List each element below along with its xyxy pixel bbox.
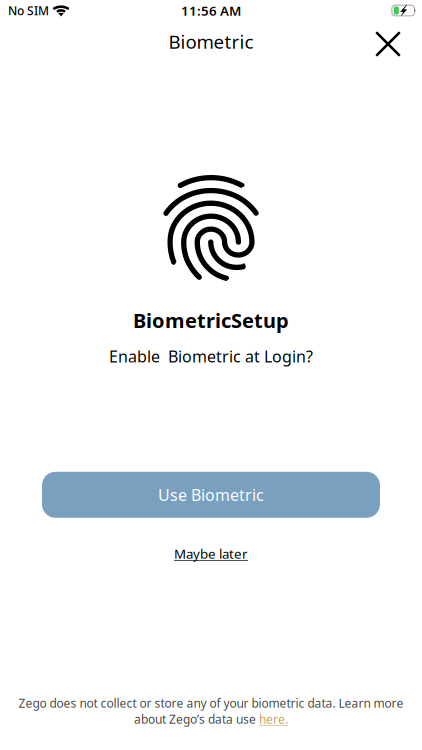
- button[interactable]: Close: [366, 21, 410, 62]
- staticText: about Zego’s data use: [134, 711, 259, 727]
- staticText: No SIM: [8, 2, 49, 18]
- button[interactable]: Use Biometric: [42, 472, 380, 518]
- staticText: Zego does not collect or store any of yo…: [18, 695, 403, 711]
- staticText: Enable Biometric at Login?: [109, 346, 313, 367]
- button[interactable]: here.: [259, 711, 288, 727]
- staticText: 11:56 AM: [181, 2, 241, 19]
- staticText: Use Biometric: [158, 484, 264, 505]
- button[interactable]: Maybe later: [174, 545, 248, 562]
- staticText: Biometric: [168, 29, 253, 54]
- staticText: Maybe later: [174, 545, 248, 562]
- staticText: BiometricSetup: [133, 307, 289, 334]
- staticText: here.: [259, 711, 288, 727]
